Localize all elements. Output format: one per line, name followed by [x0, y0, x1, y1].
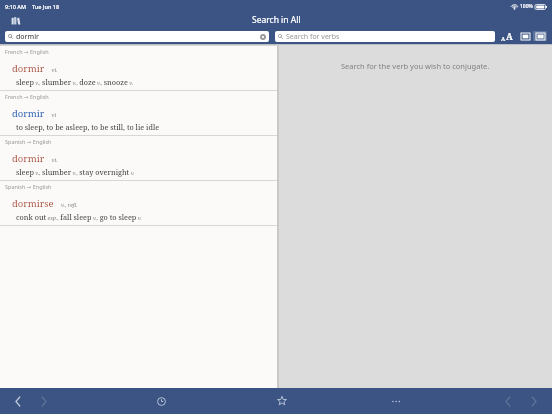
staticText: conk out esp., fall sleep v., go to slee…	[16, 212, 142, 222]
button[interactable]: Back	[10, 393, 26, 409]
staticText: to sleep, to be asleep, to be still, to …	[16, 122, 160, 132]
button[interactable]: French → English	[0, 45, 277, 90]
button[interactable]: Next	[526, 393, 542, 409]
staticText: sleep v., slumber v., stay overnight v.	[16, 167, 135, 177]
staticText: dormir vi	[12, 102, 57, 121]
button[interactable]: More	[387, 392, 405, 410]
button[interactable]: Favorites	[273, 392, 291, 410]
staticText: dormirse v., refl.	[12, 192, 78, 211]
staticText: French → English	[5, 93, 49, 100]
button[interactable]: Single pane	[518, 31, 532, 41]
button[interactable]: Clear	[260, 34, 266, 40]
button[interactable]: Spanish → English	[0, 135, 277, 180]
staticText: sleep v., slumber v., doze v., snooze v.	[16, 77, 134, 87]
button[interactable]: dormir	[5, 31, 269, 42]
staticText: French → English	[5, 48, 49, 55]
staticText: dormir	[16, 32, 40, 42]
button[interactable]: History	[152, 392, 170, 410]
button[interactable]: Spanish → English	[0, 180, 277, 225]
button[interactable]: Text size	[500, 30, 514, 42]
button[interactable]: Forward	[36, 393, 52, 409]
staticText: Spanish → English	[5, 138, 52, 145]
staticText: A	[506, 30, 513, 42]
staticText: Search for the verb you wish to conjugat…	[341, 61, 490, 71]
button[interactable]: Search for verbs	[275, 31, 495, 42]
staticText: 9:10 AM	[5, 3, 27, 10]
staticText: A	[501, 35, 506, 42]
button[interactable]: French → English	[0, 90, 277, 135]
staticText: 100%	[520, 3, 533, 10]
staticText: dormir vi.	[12, 57, 58, 76]
staticText: Search for verbs	[286, 32, 340, 42]
button[interactable]: Split pane	[533, 31, 547, 41]
staticText: dormir vi.	[12, 147, 58, 166]
button[interactable]: Previous	[500, 393, 516, 409]
staticText: Search in All	[252, 14, 301, 26]
button[interactable]: Library	[8, 13, 22, 27]
staticText: Tue Jun 18	[32, 3, 60, 10]
staticText: Spanish → English	[5, 183, 52, 190]
